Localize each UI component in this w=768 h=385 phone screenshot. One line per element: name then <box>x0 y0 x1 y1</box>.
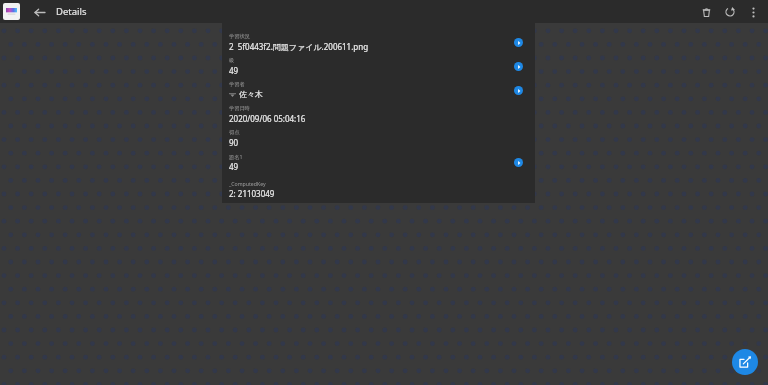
staticText: 49 <box>229 65 239 76</box>
button[interactable]: Open 級 <box>514 62 523 71</box>
button[interactable]: 学習状況 <box>229 30 529 54</box>
staticText: 得点 <box>229 129 240 136</box>
button[interactable]: Back <box>29 2 49 22</box>
staticText: 級 <box>229 57 235 64</box>
staticText: 2020/09/06 05:04:16 <box>229 113 306 124</box>
staticText: 49 <box>229 161 239 172</box>
button[interactable]: Edit <box>732 349 758 375</box>
staticText: 佐々木 <box>239 89 263 99</box>
button[interactable]: 得点 <box>229 126 529 150</box>
staticText: _ComputedKey <box>229 180 266 187</box>
button[interactable]: More options <box>743 2 763 22</box>
staticText: 学習者 <box>229 81 245 88</box>
staticText: 題名1 <box>229 153 243 160</box>
button[interactable]: Delete <box>696 2 716 22</box>
button[interactable]: Open 学習者 <box>514 86 523 95</box>
staticText: Details <box>56 5 87 18</box>
button[interactable]: 題名1 <box>229 150 529 174</box>
button[interactable]: 学習日時 <box>229 102 529 126</box>
staticText: 2: 21103049 <box>229 188 275 199</box>
staticText: 2 5f0443f2.問題ファイル.200611.png <box>229 41 369 52</box>
button[interactable]: App icon <box>3 3 20 20</box>
button[interactable]: 学習者 <box>229 78 529 102</box>
button[interactable]: _ComputedKey <box>229 177 529 201</box>
staticText: 学習状況 <box>229 33 250 40</box>
button[interactable]: 級 <box>229 54 529 78</box>
button[interactable]: Refresh <box>720 2 740 22</box>
staticText: 90 <box>229 137 239 148</box>
button[interactable]: Open 題名1 <box>514 158 523 167</box>
button[interactable]: Open 学習状況 <box>514 38 523 47</box>
staticText: 学習日時 <box>229 105 250 112</box>
